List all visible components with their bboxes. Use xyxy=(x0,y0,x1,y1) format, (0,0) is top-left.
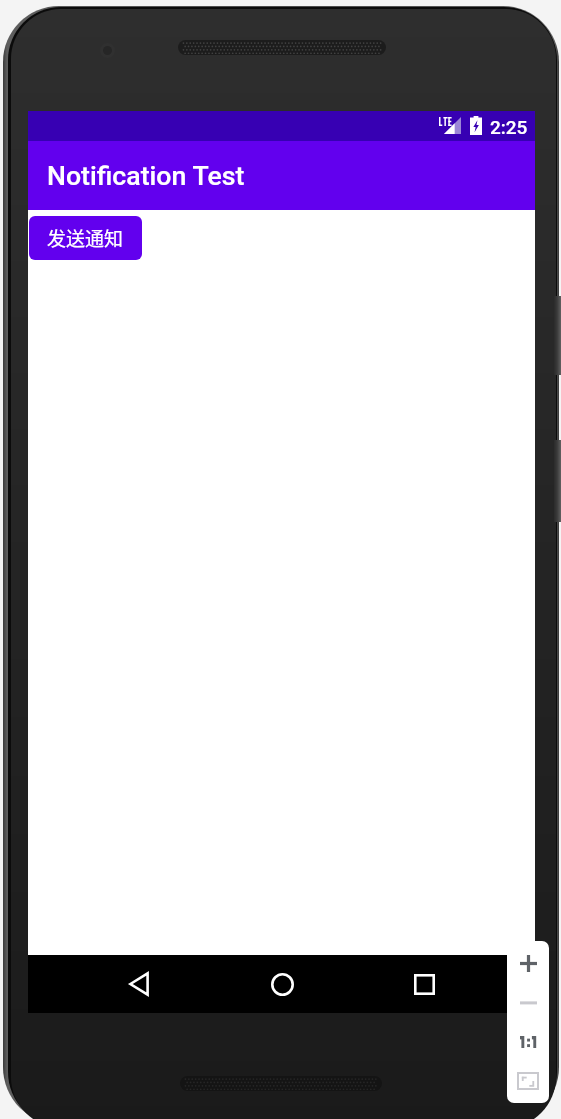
staticText: 发送通知 xyxy=(47,224,124,252)
button[interactable]: Recents xyxy=(395,955,453,1013)
button[interactable]: Zoom in xyxy=(507,943,549,983)
button[interactable]: Back xyxy=(110,955,168,1013)
button[interactable]: Home xyxy=(253,955,311,1013)
button[interactable]: Zoom out xyxy=(507,983,549,1023)
button[interactable]: 发送通知 xyxy=(29,216,142,260)
staticText: 2:25 xyxy=(490,116,528,138)
staticText: Notification Test xyxy=(47,160,245,191)
button[interactable]: Fit to screen xyxy=(507,1062,549,1100)
button[interactable]: Actual size xyxy=(507,1023,549,1061)
